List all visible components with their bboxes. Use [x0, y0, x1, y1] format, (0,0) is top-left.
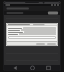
- button[interactable]: Recents: [44, 65, 53, 71]
- button[interactable]: Form field: [8, 33, 56, 35]
- button[interactable]: OK: [47, 43, 56, 45]
- button[interactable]: App bar: [4, 6, 60, 11]
- button[interactable]: Back: [11, 65, 20, 71]
- button[interactable]: Home: [28, 65, 37, 71]
- button[interactable]: Form field: [8, 29, 56, 31]
- button[interactable]: Cancel: [36, 43, 45, 45]
- button[interactable]: Form field: [8, 27, 56, 29]
- button[interactable]: Form field: [8, 31, 56, 33]
- button[interactable]: Text field: [8, 36, 56, 39]
